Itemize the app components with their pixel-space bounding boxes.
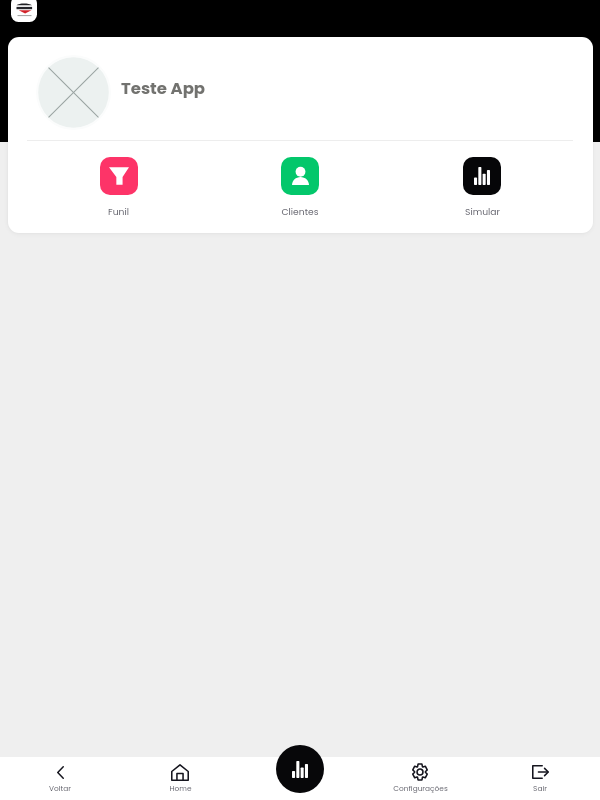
button[interactable]: Simular [276, 745, 324, 793]
button[interactable]: Clientes [209, 141, 391, 233]
staticText: Home [169, 783, 192, 793]
button[interactable]: Funil [28, 141, 209, 233]
staticText: Sair [533, 783, 547, 793]
button[interactable]: App logo [11, 0, 37, 22]
staticText: Teste App [121, 77, 206, 100]
staticText: Configurações [393, 783, 448, 793]
button[interactable]: Voltar [0, 757, 120, 800]
button[interactable]: Configurações [360, 757, 480, 800]
staticText: Simular [465, 205, 500, 218]
staticText: Clientes [281, 205, 319, 218]
button[interactable]: Simular [391, 141, 573, 233]
button[interactable]: Sair [480, 757, 600, 800]
staticText: Voltar [49, 783, 71, 793]
button[interactable]: Home [120, 757, 240, 800]
staticText: Funil [108, 205, 129, 218]
